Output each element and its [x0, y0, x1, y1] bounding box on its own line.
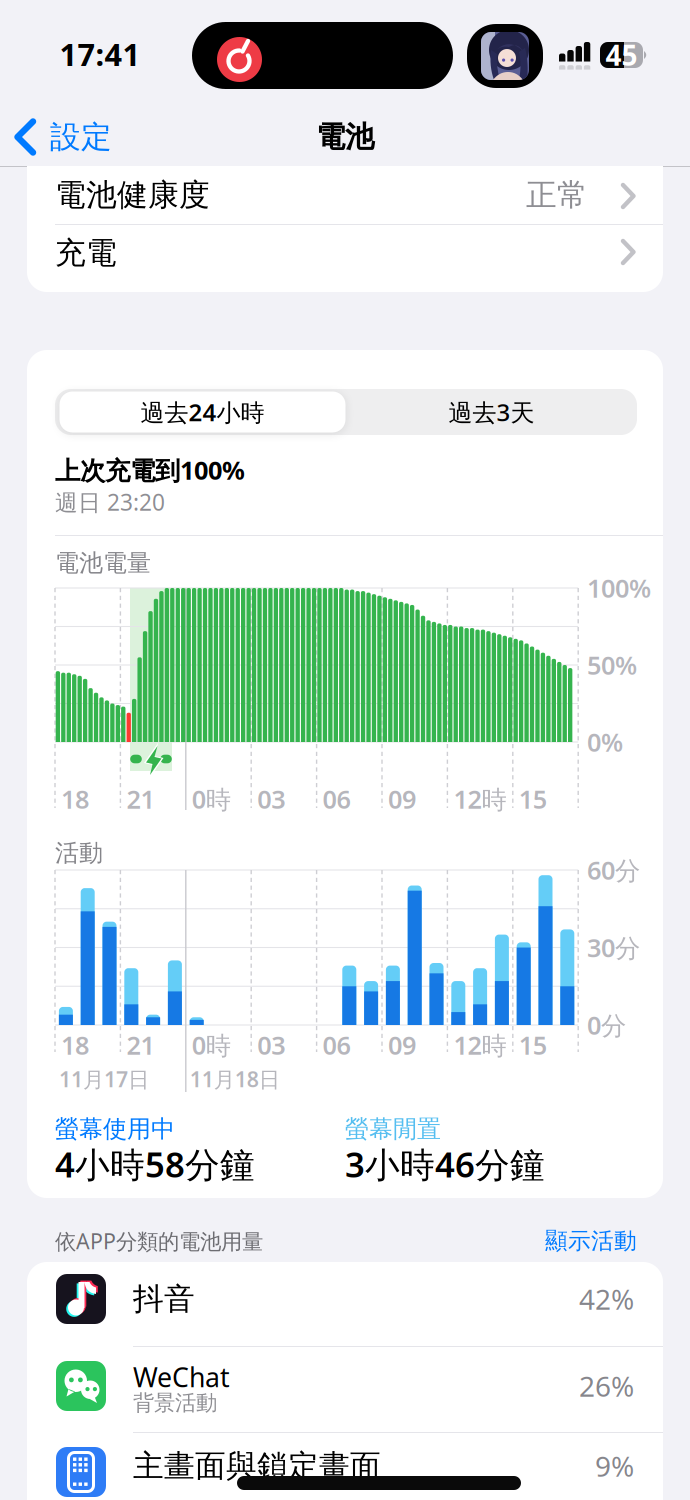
staticText: 0時: [192, 1028, 231, 1062]
staticText: 週日 23:20: [55, 487, 165, 517]
staticText: 100%: [587, 571, 651, 605]
staticText: 42%: [579, 1280, 634, 1318]
staticText: 螢幕閒置: [345, 1114, 441, 1144]
staticText: 11月17日: [59, 1065, 149, 1093]
staticText: 03: [257, 1028, 285, 1062]
staticText: 30分: [587, 931, 640, 964]
staticText: 50%: [587, 648, 637, 682]
staticText: 9%: [595, 1447, 634, 1485]
button[interactable]: 主畫面與鎖定畫面: [27, 1432, 663, 1500]
staticText: 26%: [579, 1367, 634, 1405]
staticText: 06: [323, 782, 351, 816]
staticText: 11月18日: [190, 1065, 280, 1093]
staticText: 0%: [587, 725, 623, 759]
staticText: 17:41: [59, 34, 140, 74]
button[interactable]: 過去24小時: [57, 389, 348, 435]
staticText: 電池健康度: [55, 176, 210, 214]
staticText: 15: [519, 1028, 547, 1062]
staticText: 正常: [526, 176, 588, 214]
staticText: 12時: [453, 1028, 506, 1062]
staticText: 背景活動: [133, 1390, 217, 1416]
staticText: 過去24小時: [140, 396, 264, 428]
staticText: 顯示活動: [545, 1227, 637, 1255]
button[interactable]: 設定: [14, 115, 112, 159]
staticText: 09: [388, 1028, 416, 1062]
staticText: 15: [519, 782, 547, 816]
staticText: 上次充電到100%: [55, 453, 245, 487]
staticText: 充電: [55, 234, 117, 272]
staticText: 21: [126, 1028, 154, 1062]
staticText: 12時: [453, 782, 506, 816]
staticText: 3小時46分鐘: [345, 1141, 545, 1187]
button[interactable]: WeChat: [27, 1346, 663, 1432]
staticText: 過去3天: [448, 396, 534, 428]
staticText: 0時: [192, 782, 231, 816]
staticText: 18: [61, 782, 89, 816]
staticText: 09: [388, 782, 416, 816]
staticText: 設定: [50, 118, 112, 156]
button[interactable]: 充電: [27, 224, 663, 292]
staticText: 主畫面與鎖定畫面: [133, 1447, 381, 1485]
staticText: 45: [605, 36, 637, 74]
staticText: 0分: [587, 1008, 626, 1042]
staticText: 21: [126, 782, 154, 816]
staticText: WeChat: [133, 1359, 230, 1395]
button[interactable]: 過去3天: [346, 389, 637, 435]
staticText: 活動: [55, 838, 103, 868]
button[interactable]: 抖音: [27, 1262, 663, 1346]
staticText: 抖音: [133, 1280, 195, 1318]
staticText: 03: [257, 782, 285, 816]
staticText: 電池: [316, 119, 374, 155]
staticText: 電池電量: [55, 548, 151, 578]
staticText: 18: [61, 1028, 89, 1062]
staticText: 60分: [587, 853, 640, 887]
staticText: 依APP分類的電池用量: [55, 1227, 263, 1255]
staticText: 螢幕使用中: [55, 1114, 175, 1144]
button[interactable]: 電池健康度: [27, 166, 663, 224]
button[interactable]: 顯示活動: [437, 1228, 637, 1254]
staticText: 4小時58分鐘: [55, 1141, 255, 1187]
staticText: 06: [323, 1028, 351, 1062]
